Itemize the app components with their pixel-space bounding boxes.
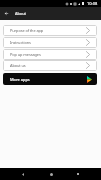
staticText: More apps [10,77,30,82]
staticText: About us [10,63,26,68]
button[interactable]: Home [44,168,58,180]
button[interactable]: About us [3,60,97,71]
staticText: Instructions [10,40,31,45]
button[interactable]: Back [0,7,12,20]
button[interactable]: Pop up messages [3,49,97,60]
button[interactable]: Purpose of the app [3,25,97,36]
staticText: 10:08 [87,1,98,6]
button[interactable]: More apps [3,73,97,85]
button[interactable]: Instructions [3,37,97,48]
button[interactable]: Back [16,168,30,180]
staticText: Pop up messages [10,52,41,57]
staticText: Purpose of the app [10,28,44,33]
button[interactable]: Recent apps [71,168,85,180]
staticText: About [15,11,26,16]
